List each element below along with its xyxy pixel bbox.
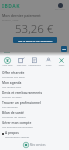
staticText: Vos rendez-vous <box>2 85 22 88</box>
staticText: Mes services <box>30 143 46 147</box>
staticText: mon compte <box>55 8 66 10</box>
staticText: Bilan de santé <box>2 111 24 115</box>
staticText: 53,26 € <box>15 21 54 37</box>
staticText: Vos données personnelles <box>2 125 33 128</box>
button[interactable]: Mon suivi <box>1 57 14 67</box>
button[interactable]: Mes docs <box>15 57 28 67</box>
button[interactable]: Gérer mon compte <box>0 119 69 129</box>
staticText: Par spécialité <box>2 105 18 108</box>
button[interactable]: A propos <box>0 129 69 139</box>
button[interactable]: Soins <box>55 57 68 67</box>
button[interactable]: Devis et remboursements <box>0 89 69 99</box>
staticText: Consulter vos devis <box>2 75 25 78</box>
staticText: Voir le détail de vos allocations <box>18 39 53 42</box>
staticText: A propos <box>5 131 19 135</box>
other: Mes docs <box>18 57 25 64</box>
staticText: Profil <box>42 64 55 67</box>
button[interactable]: Trouver un professionnel <box>0 99 69 109</box>
other: Profil <box>45 57 52 64</box>
staticText: AIDE <box>62 48 67 50</box>
button[interactable]: Profil <box>42 57 55 67</box>
staticText: Soins <box>55 64 68 67</box>
staticText: Devis et remboursements <box>2 91 43 95</box>
other: Attestations <box>31 57 38 64</box>
button[interactable]: Aide <box>61 46 67 52</box>
button[interactable]: Voir le détail de vos allocations <box>13 37 57 43</box>
button[interactable]: Attestations <box>28 57 41 67</box>
staticText: le 05/01, 13:05 <box>2 18 19 21</box>
staticText: Mon dernier paiement <box>2 13 41 18</box>
staticText: Gérer mon compte <box>2 121 32 125</box>
other: Mon suivi <box>4 57 11 64</box>
staticText: Attestations <box>28 64 41 67</box>
button[interactable]: Mon suivi personnalisé <box>2 45 67 54</box>
other: Soins <box>58 57 65 64</box>
button[interactable]: Mon compte <box>55 3 66 10</box>
staticText: Mon agenda <box>2 81 22 85</box>
staticText: Informations légales <box>5 135 30 138</box>
staticText: Mon suivi <box>1 64 14 67</box>
staticText: Offre réservée <box>2 71 25 75</box>
staticText: Mes docs <box>15 64 28 67</box>
button[interactable]: Offre réservée <box>0 69 69 79</box>
staticText: IBDAK <box>2 3 21 10</box>
staticText: Simuler un devis <box>2 95 22 98</box>
staticText: Consulter les détails <box>2 115 26 118</box>
button[interactable]: Mon agenda <box>0 79 69 89</box>
button[interactable]: Bilan de santé <box>0 109 69 119</box>
staticText: Trouver un professionnel <box>2 101 41 105</box>
